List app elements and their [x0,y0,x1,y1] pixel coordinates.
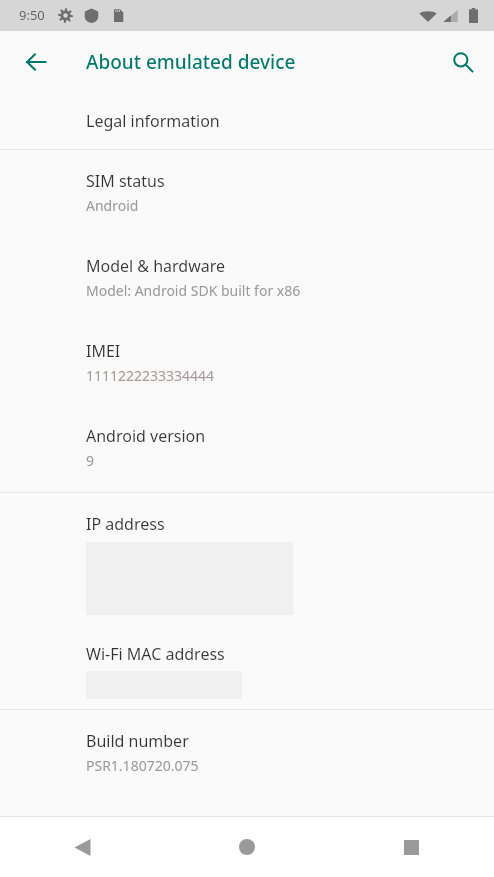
staticText: 1111222233334444 [86,366,215,385]
staticText: Legal information [86,110,220,132]
staticText: Build number [86,730,189,752]
button[interactable]: Back [0,817,164,877]
staticText: Android version [86,425,206,447]
button[interactable]: Back [12,38,60,86]
staticText: Android [86,196,139,215]
staticText: About emulated device [86,49,296,75]
staticText: IP address [86,513,165,535]
button[interactable]: Android version [0,407,494,492]
button[interactable]: Home [164,817,329,877]
button[interactable]: Search [439,38,487,86]
staticText: 9:50 [19,6,45,24]
staticText: Model: Android SDK built for x86 [86,281,301,300]
button[interactable]: IMEI [0,322,494,407]
staticText: IMEI [86,340,121,362]
staticText: SIM status [86,170,165,192]
staticText: Wi-Fi MAC address [86,643,225,665]
button[interactable]: Model & hardware [0,237,494,322]
button[interactable]: IP address [0,493,494,615]
button[interactable]: Build number [0,710,494,797]
button[interactable]: Recent apps [329,817,494,877]
button[interactable]: Wi-Fi MAC address [0,615,494,699]
staticText: 9 [86,451,95,470]
staticText: PSR1.180720.075 [86,756,199,775]
staticText: Model & hardware [86,255,226,277]
button[interactable]: Legal information [0,93,494,149]
button[interactable]: SIM status [0,150,494,237]
